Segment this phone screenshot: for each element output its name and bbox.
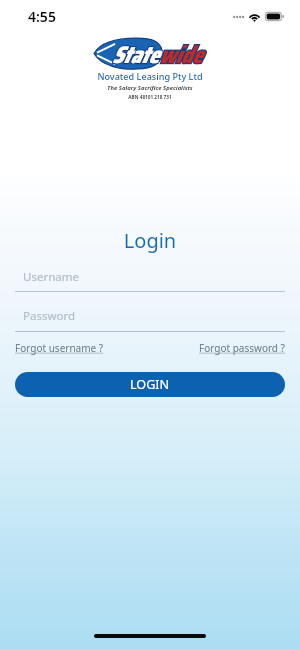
- button[interactable]: Forgot password ?: [199, 341, 285, 355]
- staticText: Login: [0, 227, 300, 254]
- staticText: State: [112, 36, 159, 74]
- staticText: ABN 48101 218 731: [0, 94, 300, 100]
- staticText: The Salary Sacrifice Specialists: [0, 84, 300, 92]
- staticText: State: [112, 36, 159, 74]
- button[interactable]: LOGIN: [15, 372, 285, 397]
- staticText: wide: [159, 36, 203, 74]
- staticText: 4:55: [28, 7, 56, 26]
- staticText: Password: [23, 308, 76, 324]
- staticText: wide: [159, 36, 203, 74]
- staticText: Novated Leasing Pty Ltd: [0, 70, 300, 82]
- button[interactable]: Forgot username ?: [15, 341, 104, 355]
- staticText: Username: [23, 269, 79, 285]
- staticText: LOGIN: [130, 376, 170, 393]
